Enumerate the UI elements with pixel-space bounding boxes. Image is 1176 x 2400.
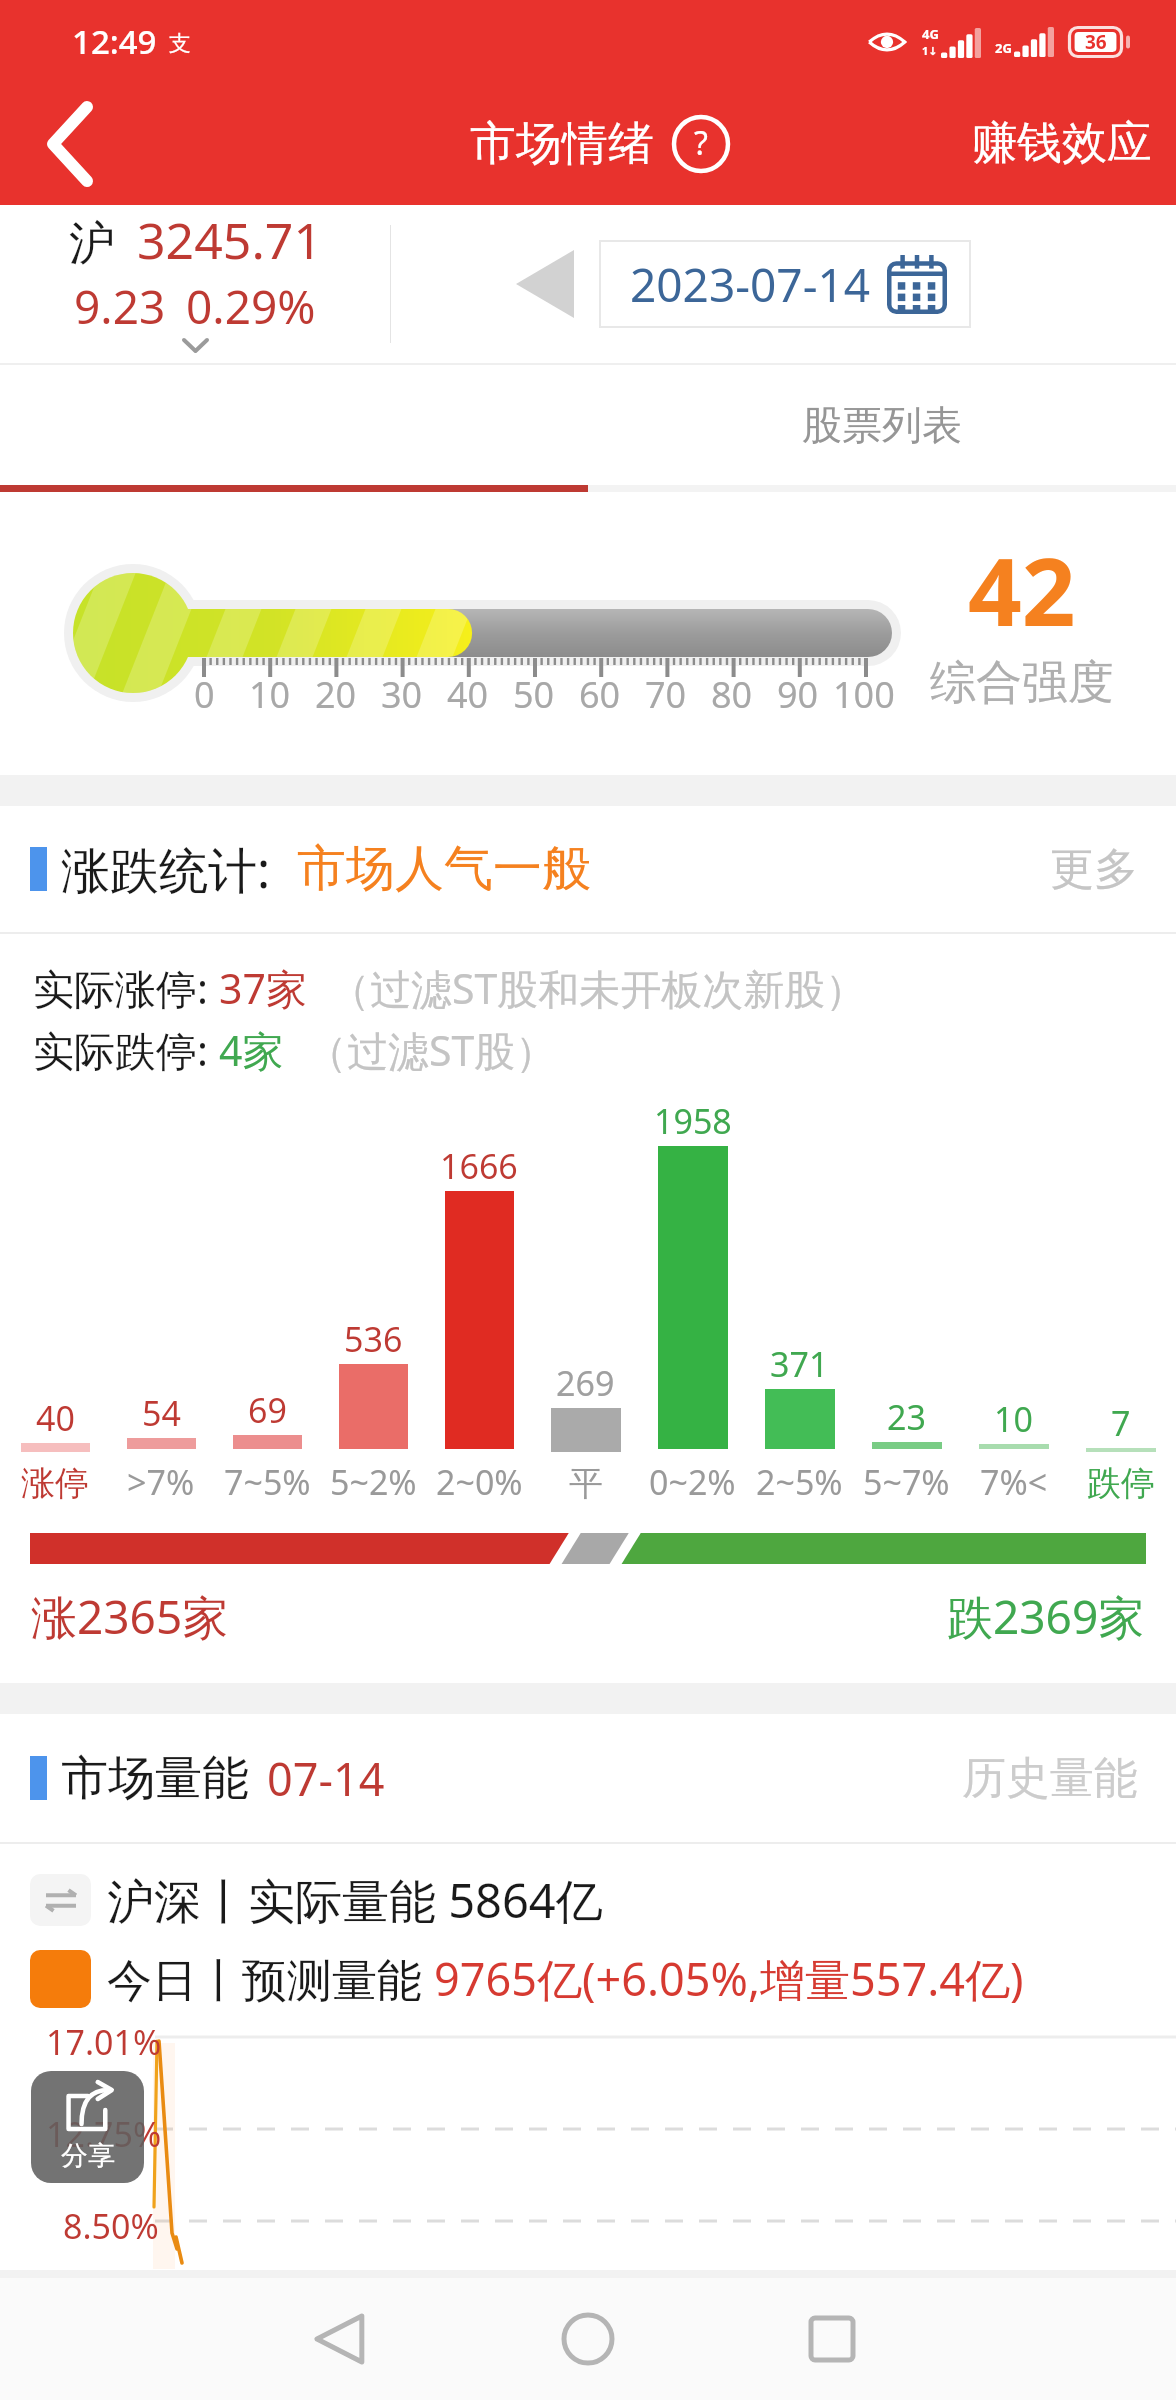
staticText: 60	[579, 670, 621, 719]
staticText: 23	[887, 1394, 926, 1440]
staticText: 综合强度	[930, 654, 1114, 712]
staticText: 20	[315, 670, 357, 719]
staticText: 2023-07-14	[630, 253, 871, 316]
staticText: 涨2365家	[31, 1585, 229, 1648]
staticText: 40	[447, 670, 489, 719]
staticText: 9765亿(+6.05%,增量557.4亿)	[434, 1948, 1024, 2009]
staticText: 90	[777, 670, 819, 719]
button[interactable]: 股票列表	[588, 365, 1176, 485]
staticText: 2~5%	[756, 1459, 843, 1505]
staticText: 7%<	[980, 1459, 1048, 1505]
staticText: 536	[344, 1316, 403, 1362]
staticText: 沪深丨实际量能 5864亿	[107, 1868, 603, 1932]
staticText: 0	[194, 670, 215, 719]
staticText: 12:49	[72, 19, 157, 64]
staticText: 涨跌统计:	[61, 836, 271, 903]
staticText: 100	[833, 670, 895, 719]
staticText: 30	[381, 670, 423, 719]
staticText: 36	[1085, 29, 1107, 55]
staticText: 50	[513, 670, 555, 719]
staticText: 80	[711, 670, 753, 719]
staticText: 40	[36, 1395, 75, 1441]
staticText: 12.75%	[46, 2111, 162, 2157]
button[interactable]: Back	[280, 2279, 400, 2399]
staticText: 实际涨停:	[33, 960, 219, 1016]
button[interactable]: 沪	[0, 205, 390, 363]
staticText: 5~2%	[330, 1459, 417, 1505]
staticText: 371	[770, 1341, 829, 1387]
staticText: （过滤ST股）	[306, 1022, 557, 1078]
staticText: 市场人气一般	[297, 838, 591, 900]
staticText: >7%	[127, 1459, 195, 1505]
staticText: ?	[694, 121, 708, 165]
staticText: 5~7%	[863, 1459, 950, 1505]
staticText: 269	[556, 1360, 615, 1406]
staticText: 7~5%	[224, 1459, 311, 1505]
button[interactable]: Share	[31, 2071, 144, 2183]
staticText: 3245.71	[137, 206, 322, 274]
staticText: 8.50%	[63, 2203, 159, 2249]
staticText: 市场量能	[61, 1749, 249, 1808]
staticText: 支	[169, 30, 191, 58]
staticText: 2~0%	[436, 1459, 523, 1505]
staticText: 42	[968, 526, 1076, 654]
staticText: 17.01%	[46, 2019, 162, 2065]
staticText: 历史量能	[962, 1751, 1138, 1806]
staticText: 分享	[61, 2139, 115, 2173]
staticText: 跌停	[1087, 1462, 1155, 1505]
staticText: 4家	[219, 1022, 284, 1078]
staticText: 10	[994, 1396, 1033, 1442]
staticText: 0~2%	[649, 1459, 736, 1505]
staticText: 市场情绪	[470, 115, 654, 173]
staticText: 股票列表	[802, 400, 962, 450]
staticText: 10	[249, 670, 291, 719]
staticText: 1↓	[922, 43, 938, 58]
button[interactable]: 2023-07-14	[606, 241, 971, 327]
staticText: 平	[569, 1462, 603, 1505]
button[interactable]: Previous day	[490, 234, 600, 334]
staticText: 沪	[69, 215, 115, 273]
staticText: 7	[1111, 1400, 1131, 1446]
button[interactable]: Recents	[772, 2279, 892, 2399]
staticText: 涨停	[21, 1462, 89, 1505]
button[interactable]: 更多	[1042, 834, 1146, 905]
staticText: 07-14	[267, 1748, 385, 1809]
staticText: 1666	[440, 1143, 518, 1189]
button[interactable]: 历史量能	[954, 1743, 1146, 1814]
staticText: 9.23	[74, 275, 166, 338]
staticText: 跌2369家	[947, 1585, 1145, 1648]
staticText: 0.29%	[186, 275, 316, 338]
staticText: 赚钱效应	[972, 115, 1152, 172]
button[interactable]: 赚钱效应	[964, 103, 1160, 184]
staticText: 1958	[654, 1098, 732, 1144]
button[interactable]: Back	[20, 94, 120, 194]
staticText: 54	[142, 1390, 181, 1436]
button[interactable]: Home	[528, 2279, 648, 2399]
staticText: （过滤ST股和未开板次新股）	[329, 960, 867, 1016]
staticText: 70	[645, 670, 687, 719]
staticText: 37家	[219, 960, 307, 1016]
staticText: 今日丨预测量能	[107, 1948, 434, 2009]
staticText: 69	[248, 1387, 287, 1433]
staticText: 4G	[922, 25, 939, 43]
staticText: 实际跌停:	[33, 1022, 219, 1078]
button[interactable]: Help	[672, 115, 730, 173]
staticText: 更多	[1050, 842, 1138, 897]
staticText: 2G	[995, 39, 1012, 57]
